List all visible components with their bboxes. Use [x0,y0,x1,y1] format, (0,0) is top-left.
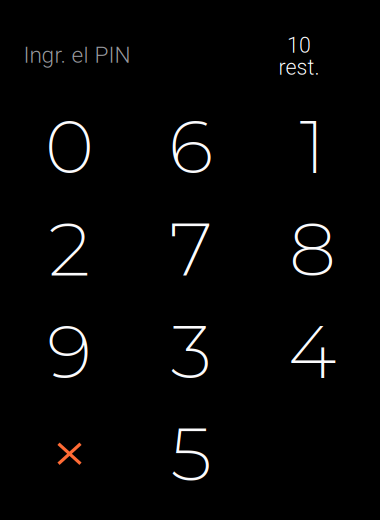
button[interactable]: 7 [130,197,252,300]
button[interactable]: 2 [9,197,130,300]
staticText: 5 [170,408,211,499]
button[interactable]: 0 [9,95,130,197]
button[interactable]: 4 [252,300,373,402]
staticText: 0 [45,101,94,192]
button[interactable]: 5 [130,402,252,505]
staticText: 3 [170,306,211,397]
staticText: 2 [48,203,90,294]
button[interactable]: 3 [130,300,252,402]
staticText: 6 [168,101,213,192]
staticText: 8 [289,203,336,294]
staticText: 10 [287,33,311,58]
staticText: 4 [288,306,337,397]
staticText: Ingr. el PIN [23,42,130,68]
staticText: rest. [278,55,319,80]
button[interactable]: 6 [130,95,252,197]
button[interactable]: Delete [9,402,130,505]
button[interactable]: 9 [9,300,130,402]
button[interactable]: 8 [252,197,373,300]
staticText: 1 [299,101,325,192]
staticText: 9 [47,306,92,397]
staticText: 7 [169,203,212,294]
button[interactable]: 1 [252,95,373,197]
